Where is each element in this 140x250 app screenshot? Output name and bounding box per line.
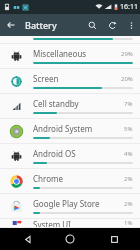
staticText: 2% — [124, 175, 133, 183]
staticText: 1% — [124, 219, 133, 227]
button[interactable]: Home — [53, 228, 87, 250]
staticText: 4% — [124, 150, 133, 158]
button[interactable]: Miscellaneous — [0, 44, 140, 69]
button[interactable]: Search — [82, 15, 102, 35]
staticText: Android System — [33, 123, 124, 134]
button[interactable]: Android System — [0, 119, 140, 144]
staticText: Screen — [33, 73, 121, 84]
staticText: System UI — [33, 219, 124, 227]
staticText: 7% — [124, 100, 133, 108]
staticText: 29% — [121, 50, 133, 58]
button[interactable]: Refresh — [102, 15, 122, 35]
button[interactable]: Recent apps — [97, 228, 131, 250]
staticText: Google Play Store — [33, 198, 124, 209]
button[interactable]: System UI — [0, 219, 140, 228]
staticText: Miscellaneous — [33, 48, 121, 59]
staticText: 2% — [124, 200, 133, 208]
button[interactable]: Back — [10, 228, 44, 250]
button[interactable]: Google Play Store — [0, 194, 140, 219]
button[interactable]: Android OS — [0, 144, 140, 169]
button[interactable]: Back — [0, 14, 22, 36]
staticText: Chrome — [33, 173, 124, 184]
button[interactable]: More options — [122, 16, 140, 34]
staticText: Android OS — [33, 148, 124, 159]
staticText: 16:11 — [120, 2, 138, 12]
button[interactable]: Cell standby — [0, 94, 140, 119]
staticText: 5% — [124, 125, 133, 133]
staticText: 20% — [121, 75, 133, 83]
staticText: Battery — [25, 19, 82, 31]
button[interactable] — [0, 36, 140, 44]
button[interactable]: Chrome — [0, 169, 140, 194]
button[interactable]: Screen — [0, 69, 140, 94]
staticText: Cell standby — [33, 98, 124, 109]
